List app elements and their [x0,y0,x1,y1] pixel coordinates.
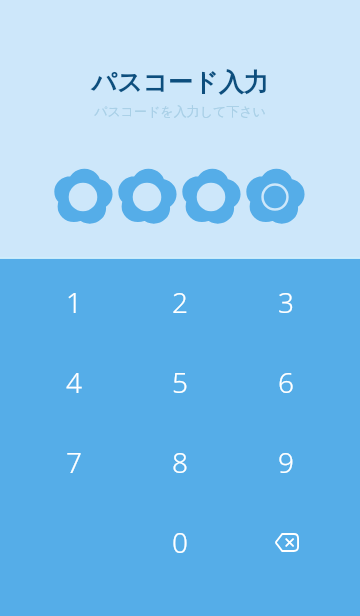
staticText: 4 [66,363,82,401]
button[interactable]: 5 [127,342,233,422]
staticText: 6 [278,363,294,401]
button[interactable]: 1 [21,262,127,342]
button[interactable]: 3 [233,262,339,342]
staticText: 5 [172,363,188,401]
other: Backspace [274,533,299,552]
staticText: 0 [172,523,188,561]
button[interactable]: 2 [127,262,233,342]
button[interactable]: 6 [233,342,339,422]
staticText: パスコードを入力して下さい [94,103,266,119]
staticText: 7 [66,443,82,481]
button[interactable]: Backspace [233,502,339,582]
button[interactable]: 9 [233,422,339,502]
button[interactable]: 7 [21,422,127,502]
button[interactable]: 8 [127,422,233,502]
staticText: 1 [66,283,82,321]
staticText: パスコード入力 [91,67,269,98]
staticText: 9 [278,443,294,481]
button[interactable]: 0 [127,502,233,582]
staticText: 8 [172,443,188,481]
button[interactable]: 4 [21,342,127,422]
staticText: 2 [172,283,188,321]
staticText: 3 [278,283,294,321]
